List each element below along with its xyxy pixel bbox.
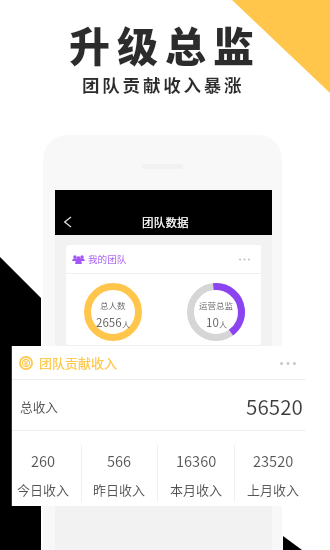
button[interactable]: 260: [12, 431, 81, 506]
staticText: 总收入: [20, 397, 59, 415]
staticText: 人: [122, 319, 130, 331]
staticText: 23520: [253, 450, 294, 471]
staticText: 昨日收入: [93, 480, 146, 499]
button[interactable]: 总收入: [20, 380, 303, 430]
staticText: 总人数: [100, 299, 126, 311]
button[interactable]: 23520: [235, 431, 306, 506]
staticText: 团队贡献收入暴涨: [82, 72, 245, 97]
staticText: 运营总监: [199, 299, 234, 311]
staticText: 上月收入: [247, 480, 300, 499]
staticText: 升级总监: [69, 14, 261, 73]
button[interactable]: More options: [279, 357, 297, 369]
staticText: 566: [107, 450, 132, 471]
button[interactable]: 566: [82, 431, 157, 506]
staticText: 260: [31, 450, 56, 471]
staticText: 团队数据: [142, 214, 189, 231]
button[interactable]: 16360: [158, 431, 234, 506]
staticText: 团队贡献收入: [39, 353, 118, 372]
staticText: 16360: [176, 450, 217, 471]
staticText: 10: [206, 314, 219, 331]
staticText: 人: [219, 319, 227, 331]
staticText: 56520: [246, 391, 303, 421]
button[interactable]: Back: [58, 213, 76, 230]
staticText: 我的团队: [88, 252, 127, 266]
staticText: 2656: [96, 314, 122, 331]
button[interactable]: More options: [238, 254, 251, 264]
staticText: 本月收入: [170, 480, 223, 499]
staticText: 今日收入: [17, 480, 70, 499]
